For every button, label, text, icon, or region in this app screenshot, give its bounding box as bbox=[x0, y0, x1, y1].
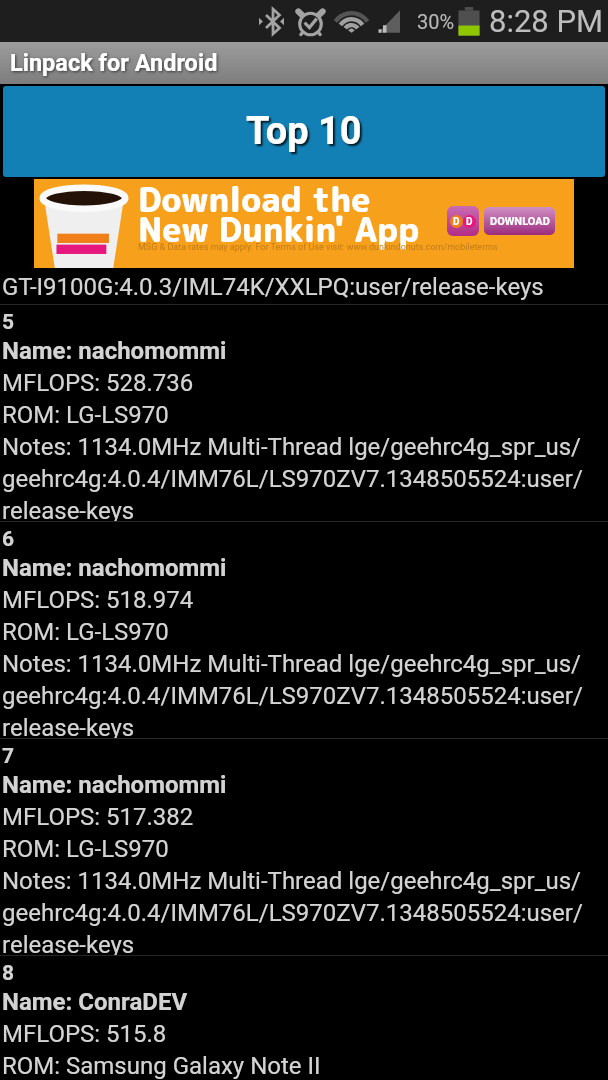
staticText: Notes: 1134.0MHz Multi-Thread lge/geehrc… bbox=[2, 430, 581, 462]
staticText: MFLOPS: 518.974 bbox=[2, 583, 194, 615]
other: Mobile signal bbox=[376, 6, 401, 37]
staticText: release-keys bbox=[2, 494, 135, 521]
other: Bluetooth connected bbox=[259, 6, 284, 37]
staticText: ROM: LG-LS970 bbox=[2, 398, 169, 430]
staticText: geehrc4g:4.0.4/IMM76L/LS970ZV7.134850552… bbox=[2, 896, 583, 928]
button[interactable]: Dunkin Donuts advertisement bbox=[34, 179, 574, 268]
staticText: release-keys bbox=[2, 928, 135, 955]
staticText: Download the bbox=[138, 175, 371, 222]
other: Battery 30 percent bbox=[458, 4, 480, 38]
staticText: MSG & Data rates may apply. For Terms of… bbox=[138, 242, 498, 253]
staticText: D bbox=[453, 216, 460, 228]
staticText: 6 bbox=[2, 525, 15, 551]
staticText: 5 bbox=[2, 308, 15, 334]
button[interactable]: 7 bbox=[0, 739, 608, 955]
staticText: ROM: LG-LS970 bbox=[2, 832, 169, 864]
staticText: Notes: 1134.0MHz Multi-Thread lge/geehrc… bbox=[2, 864, 581, 896]
staticText: Name: nachomommi bbox=[2, 334, 227, 366]
staticText: release-keys bbox=[2, 711, 135, 738]
other: Alarm set bbox=[297, 6, 324, 37]
staticText: Notes: 1134.0MHz Multi-Thread lge/geehrc… bbox=[2, 647, 581, 679]
staticText: MFLOPS: 528.736 bbox=[2, 366, 194, 398]
staticText: ROM: Samsung Galaxy Note II bbox=[2, 1049, 321, 1080]
staticText: DOWNLOAD bbox=[490, 215, 550, 228]
button[interactable]: Top 10 bbox=[3, 86, 605, 177]
staticText: Name: nachomommi bbox=[2, 768, 227, 800]
staticText: 7 bbox=[2, 742, 15, 768]
staticText: Linpack for Android bbox=[10, 49, 218, 77]
staticText: GT-I9100G:4.0.3/IML74K/XXLPQ:user/releas… bbox=[2, 270, 544, 302]
staticText: geehrc4g:4.0.4/IMM76L/LS970ZV7.134850552… bbox=[2, 679, 583, 711]
staticText: 8 bbox=[2, 959, 15, 985]
staticText: Name: nachomommi bbox=[2, 551, 227, 583]
staticText: D bbox=[466, 216, 473, 228]
staticText: ROM: LG-LS970 bbox=[2, 615, 169, 647]
button[interactable]: 6 bbox=[0, 522, 608, 738]
staticText: 8:28 PM bbox=[489, 3, 604, 39]
staticText: New Dunkin' App bbox=[138, 205, 420, 252]
button[interactable]: 5 bbox=[0, 305, 608, 521]
other: Wi-Fi bbox=[335, 6, 368, 37]
staticText: geehrc4g:4.0.4/IMM76L/LS970ZV7.134850552… bbox=[2, 462, 583, 494]
staticText: MFLOPS: 515.8 bbox=[2, 1017, 167, 1049]
staticText: Name: ConraDEV bbox=[2, 985, 188, 1017]
staticText: 30% bbox=[417, 10, 455, 33]
button[interactable]: 8 bbox=[0, 956, 608, 1080]
staticText: Top 10 bbox=[246, 109, 362, 154]
staticText: MFLOPS: 517.382 bbox=[2, 800, 194, 832]
